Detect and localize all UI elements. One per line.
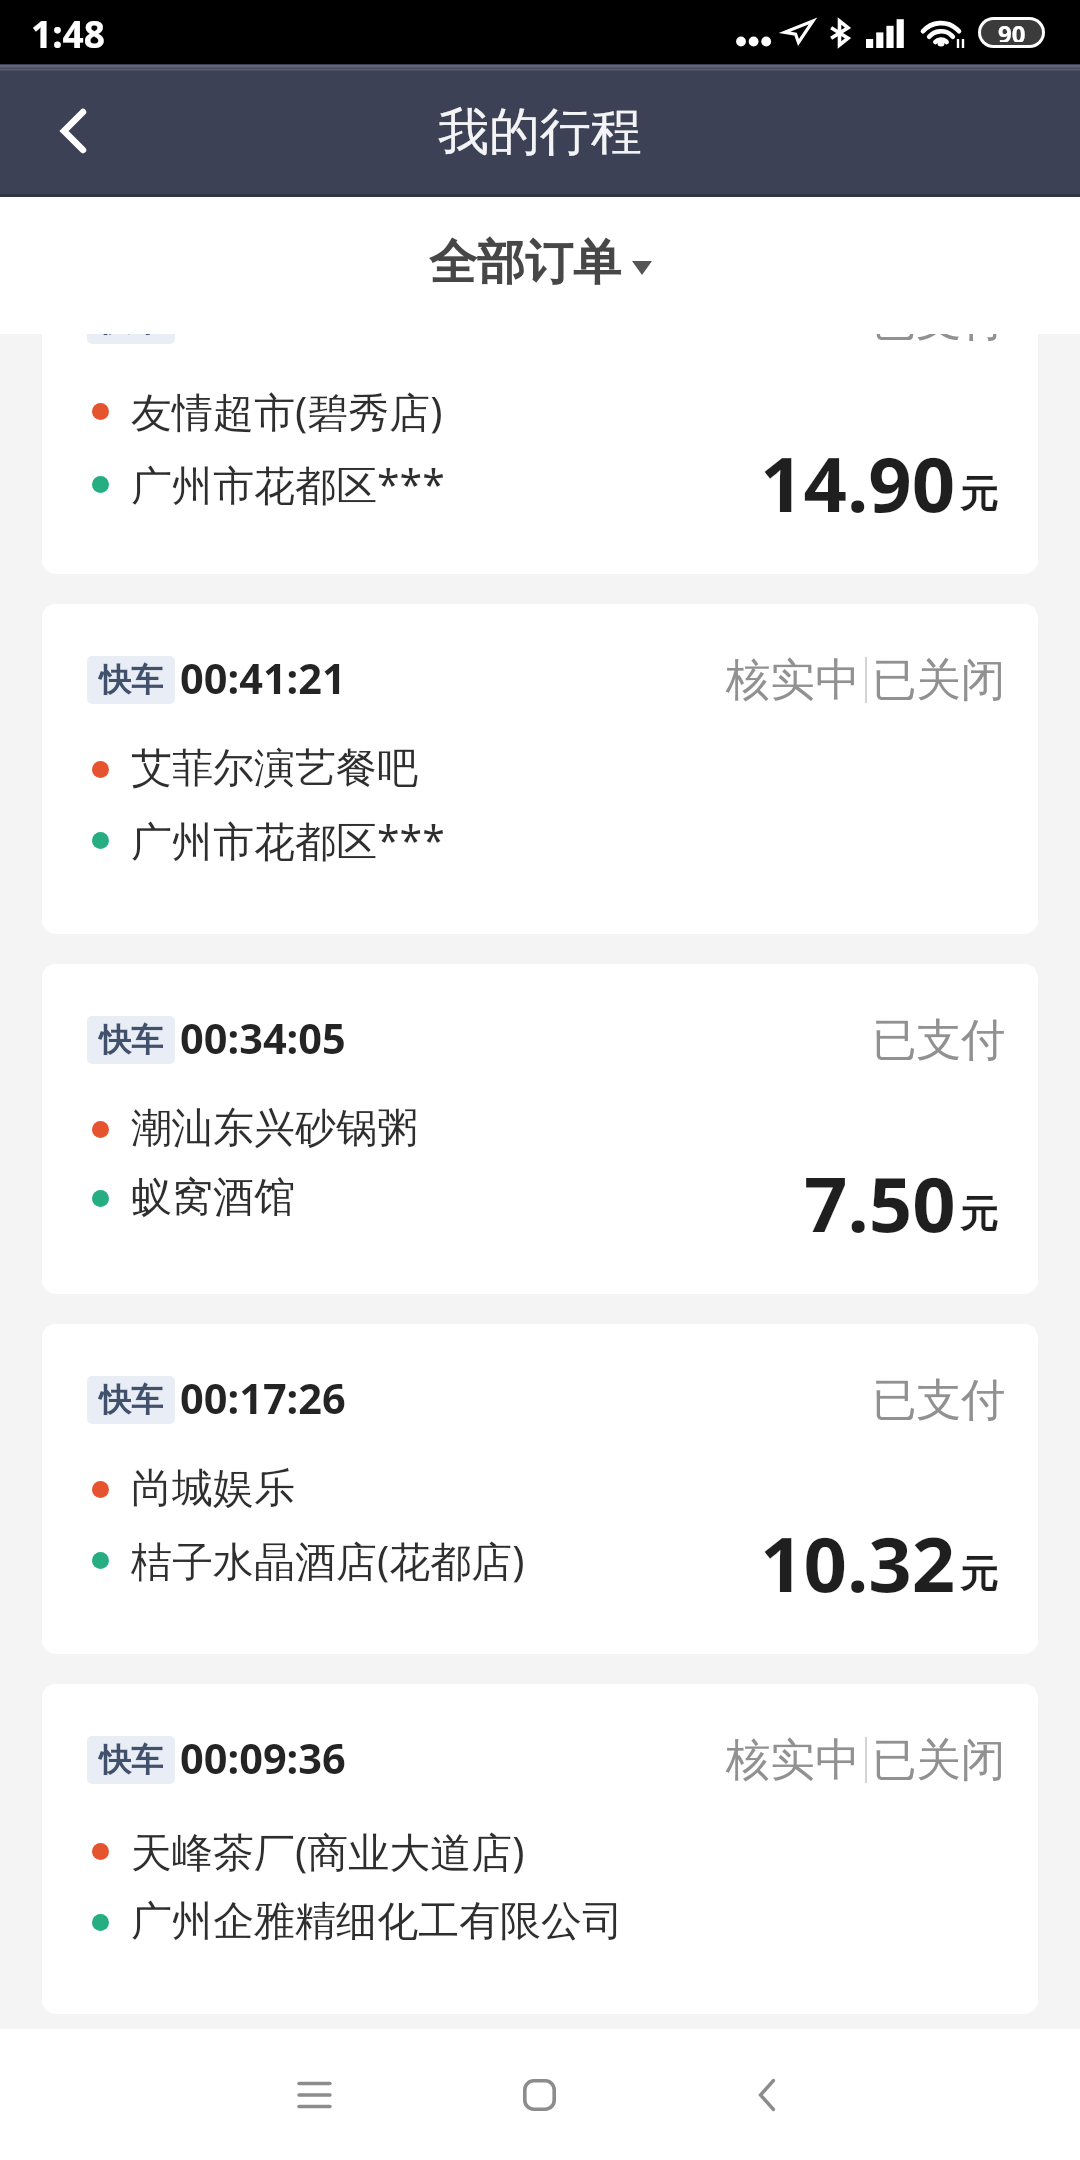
button[interactable]: Back	[702, 2040, 832, 2150]
staticText: 快车	[99, 1740, 163, 1780]
button[interactable]: 快车	[42, 1684, 1038, 2014]
staticText: 10.32	[760, 1511, 956, 1615]
staticText: 元	[960, 1190, 998, 1238]
staticText: 广州市花都区***	[131, 812, 445, 868]
staticText: 广州市花都区***	[131, 456, 445, 512]
staticText: 元	[960, 1550, 998, 1598]
staticText: 我的行程	[438, 100, 642, 164]
staticText: 已支付	[872, 334, 1006, 348]
staticText: 快车	[99, 660, 163, 700]
staticText: 核实中	[726, 652, 860, 708]
staticText: 已支付	[872, 1372, 1006, 1428]
staticText: 友情超市(碧秀店)	[131, 383, 443, 439]
staticText: 元	[960, 470, 998, 518]
staticText: 已支付	[872, 1012, 1006, 1068]
staticText: 广州企雅精细化工有限公司	[131, 1896, 623, 1948]
staticText: 1:48	[31, 8, 105, 58]
staticText: 核实中	[726, 1732, 860, 1788]
staticText: 快车	[99, 1380, 163, 1420]
staticText: 桔子水晶酒店(花都店)	[131, 1532, 525, 1588]
staticText: 潮汕东兴砂锅粥	[131, 1103, 418, 1155]
staticText: 7.50	[804, 1151, 956, 1255]
staticText: 天峰茶厂(商业大道店)	[131, 1823, 525, 1879]
button[interactable]: 全部订单	[429, 233, 652, 293]
button[interactable]: 快车	[42, 604, 1038, 934]
staticText: 00:17:26	[180, 1370, 346, 1427]
button[interactable]: 快车	[42, 334, 1038, 574]
staticText: 14.90	[760, 431, 956, 535]
button[interactable]: 快车	[42, 1324, 1038, 1654]
staticText: 90	[998, 20, 1026, 42]
staticText: 尚城娱乐	[131, 1463, 295, 1515]
staticText: 快车	[99, 334, 163, 340]
staticText: 00:34:05	[180, 1010, 346, 1067]
button[interactable]: Recents	[249, 2040, 379, 2150]
staticText: 全部订单	[429, 233, 621, 293]
staticText: 00:41:21	[180, 650, 346, 707]
staticText: 蚁窝酒馆	[131, 1172, 295, 1224]
staticText: 00:09:36	[180, 1730, 346, 1787]
staticText: 艾菲尔演艺餐吧	[131, 743, 418, 795]
staticText: 已关闭	[872, 1732, 1006, 1788]
button[interactable]: Home	[474, 2040, 604, 2150]
button[interactable]: Back	[0, 64, 146, 197]
staticText: 已关闭	[872, 652, 1006, 708]
button[interactable]: 快车	[42, 964, 1038, 1294]
staticText: 快车	[99, 1020, 163, 1060]
